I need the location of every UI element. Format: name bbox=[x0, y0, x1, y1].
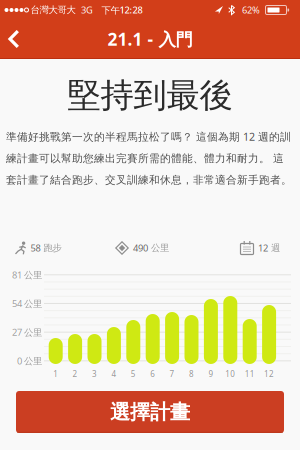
staticText: 3 bbox=[92, 369, 97, 379]
staticText: 6 bbox=[150, 369, 155, 379]
staticText: 54 公里 bbox=[12, 297, 42, 310]
staticText: 21.1 - 入門 bbox=[107, 27, 192, 50]
staticText: 3G bbox=[81, 4, 93, 16]
staticText: 11 bbox=[245, 369, 255, 379]
staticText: 週 bbox=[271, 242, 280, 254]
staticText: 5 bbox=[131, 369, 136, 379]
staticText: 1 bbox=[53, 369, 58, 379]
staticText: 10 bbox=[225, 369, 235, 379]
button[interactable]: 選擇計畫 bbox=[16, 391, 284, 433]
staticText: 81 公里 bbox=[12, 269, 42, 281]
staticText: 8 bbox=[189, 369, 194, 379]
staticText: 62% bbox=[242, 4, 260, 16]
staticText: 2 bbox=[73, 369, 78, 379]
staticText: 4 bbox=[111, 369, 116, 379]
staticText: 堅持到最後 bbox=[67, 75, 232, 116]
staticText: 9 bbox=[208, 369, 213, 379]
staticText: 準備好挑戰第一次的半程馬拉松了嗎？ 這個為期 12 週的訓練計畫可以幫助您練出完… bbox=[6, 129, 292, 187]
staticText: 選擇計畫 bbox=[110, 400, 190, 424]
staticText: 58 bbox=[30, 242, 40, 254]
staticText: 下午12:28 bbox=[101, 4, 142, 16]
staticText: 0 公里 bbox=[17, 355, 42, 367]
staticText: 台灣大哥大 bbox=[30, 4, 75, 16]
staticText: 12 bbox=[264, 369, 274, 379]
staticText: 27 公里 bbox=[12, 326, 42, 338]
staticText: 490 bbox=[133, 242, 148, 254]
staticText: 跑步 bbox=[43, 242, 61, 254]
staticText: 12 bbox=[258, 242, 268, 254]
button[interactable]: Back bbox=[0, 19, 19, 58]
staticText: 公里 bbox=[151, 242, 169, 254]
staticText: 7 bbox=[170, 369, 175, 379]
